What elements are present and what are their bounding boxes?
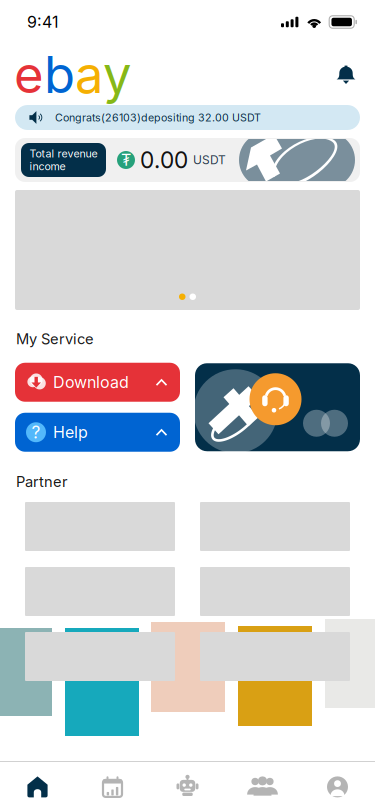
staticText: a bbox=[75, 44, 103, 105]
staticText: Download bbox=[53, 373, 129, 392]
button[interactable]: Market bbox=[75, 762, 150, 812]
staticText: Total revenue income bbox=[29, 147, 97, 173]
button[interactable]: Home bbox=[0, 762, 75, 812]
staticText: b bbox=[44, 44, 75, 105]
button[interactable]: ? bbox=[15, 413, 180, 452]
button[interactable]: Profile bbox=[300, 762, 375, 812]
staticText: Help bbox=[53, 423, 88, 442]
button[interactable]: Customer support bbox=[195, 363, 360, 451]
staticText: ? bbox=[31, 422, 40, 443]
staticText: 9:41 bbox=[27, 12, 59, 32]
button[interactable]: Team bbox=[225, 762, 300, 812]
button[interactable]: Download bbox=[15, 363, 180, 402]
staticText: Partner bbox=[16, 473, 68, 490]
staticText: e bbox=[14, 44, 44, 105]
staticText: Congrats(26103)depositing 32.00 USDT bbox=[55, 111, 261, 124]
staticText: My Service bbox=[16, 330, 94, 348]
staticText: ₮ bbox=[121, 150, 131, 170]
staticText: USDT bbox=[193, 153, 226, 167]
staticText: y bbox=[103, 44, 131, 105]
button[interactable]: Notifications bbox=[335, 64, 357, 85]
button[interactable]: Robot bbox=[150, 762, 225, 812]
staticText: 0.00 bbox=[140, 146, 188, 174]
